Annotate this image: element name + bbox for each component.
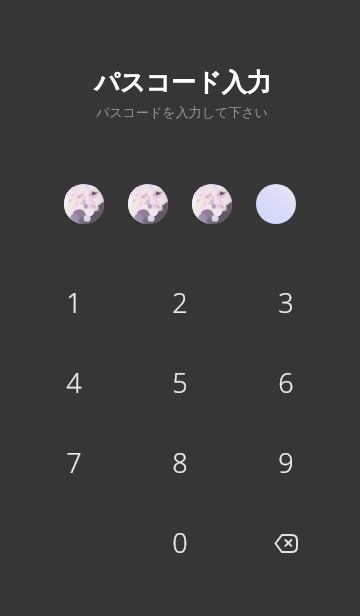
button[interactable]: 0 bbox=[127, 502, 233, 582]
button[interactable]: 8 bbox=[127, 422, 233, 502]
staticText: 8 bbox=[172, 444, 188, 481]
staticText: 6 bbox=[278, 364, 294, 401]
button[interactable]: 1 bbox=[21, 262, 127, 342]
staticText: 7 bbox=[66, 444, 82, 481]
button[interactable]: 9 bbox=[233, 422, 339, 502]
button[interactable]: 6 bbox=[233, 342, 339, 422]
button[interactable]: 3 bbox=[233, 262, 339, 342]
staticText: 5 bbox=[172, 364, 188, 401]
staticText: 0 bbox=[172, 524, 188, 561]
button[interactable]: 4 bbox=[21, 342, 127, 422]
staticText: 9 bbox=[278, 444, 294, 481]
staticText: パスコードを入力して下さい bbox=[96, 104, 268, 120]
staticText: 4 bbox=[66, 364, 82, 401]
staticText: 1 bbox=[66, 284, 82, 321]
staticText: 2 bbox=[172, 284, 188, 321]
staticText: 3 bbox=[278, 284, 294, 321]
button[interactable]: 7 bbox=[21, 422, 127, 502]
button[interactable]: 2 bbox=[127, 262, 233, 342]
button[interactable]: Backspace bbox=[233, 502, 339, 582]
staticText: パスコード入力 bbox=[94, 67, 272, 98]
button[interactable]: 5 bbox=[127, 342, 233, 422]
